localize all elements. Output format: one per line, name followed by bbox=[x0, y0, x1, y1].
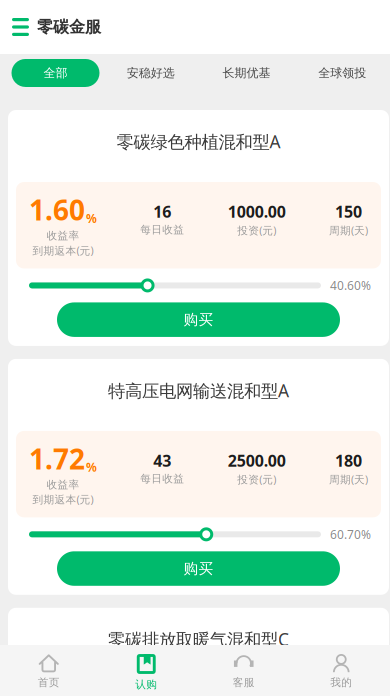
staticText: 周期(天) bbox=[329, 223, 368, 237]
button[interactable]: 长期优基 bbox=[214, 59, 278, 87]
staticText: 认购 bbox=[135, 678, 157, 691]
staticText: 60.70% bbox=[330, 526, 371, 542]
staticText: % bbox=[86, 459, 97, 475]
staticText: 每日收益 bbox=[140, 472, 184, 485]
staticText: % bbox=[86, 210, 97, 226]
button[interactable]: 购买 bbox=[57, 302, 340, 337]
staticText: 安稳好选 bbox=[127, 66, 175, 80]
button[interactable]: 安稳好选 bbox=[119, 59, 183, 87]
staticText: 180 bbox=[335, 450, 362, 471]
staticText: 我的 bbox=[330, 676, 352, 689]
button[interactable]: Menu bbox=[0, 18, 37, 36]
staticText: 零碳绿色种植混和型A bbox=[116, 130, 280, 153]
staticText: 长期优基 bbox=[222, 66, 270, 80]
staticText: 投资(元) bbox=[237, 223, 276, 237]
staticText: 43 bbox=[153, 450, 171, 471]
staticText: 1.60 bbox=[29, 191, 85, 228]
staticText: 客服 bbox=[233, 676, 255, 689]
staticText: 全球领投 bbox=[318, 66, 366, 80]
button[interactable]: 我的 bbox=[292, 645, 390, 696]
staticText: 收益率 bbox=[46, 478, 79, 491]
staticText: 每日收益 bbox=[140, 223, 184, 236]
button[interactable]: 首页 bbox=[0, 645, 97, 696]
staticText: 投资(元) bbox=[237, 472, 276, 486]
button[interactable]: 认购 bbox=[97, 645, 195, 696]
staticText: 零碳金服 bbox=[37, 17, 101, 37]
staticText: 全部 bbox=[43, 66, 67, 80]
staticText: 到期返本(元) bbox=[32, 243, 93, 257]
button[interactable]: 全部 bbox=[11, 59, 99, 87]
staticText: 零碳排放取暖气混和型C bbox=[108, 628, 289, 651]
staticText: 周期(天) bbox=[329, 472, 368, 486]
staticText: 特高压电网输送混和型A bbox=[108, 379, 289, 402]
staticText: 首页 bbox=[38, 676, 60, 689]
staticText: 收益率 bbox=[46, 229, 79, 242]
button[interactable]: 全球领投 bbox=[310, 59, 374, 87]
staticText: 购买 bbox=[183, 560, 213, 578]
staticText: 2500.00 bbox=[228, 450, 286, 471]
staticText: 150 bbox=[335, 201, 362, 222]
staticText: 到期返本(元) bbox=[32, 492, 93, 506]
staticText: 1.72 bbox=[29, 440, 85, 477]
staticText: 1000.00 bbox=[228, 201, 286, 222]
staticText: 16 bbox=[153, 201, 171, 222]
staticText: 购买 bbox=[183, 311, 213, 329]
button[interactable]: 客服 bbox=[195, 645, 292, 696]
button[interactable]: 购买 bbox=[57, 551, 340, 586]
staticText: 40.60% bbox=[330, 277, 371, 293]
